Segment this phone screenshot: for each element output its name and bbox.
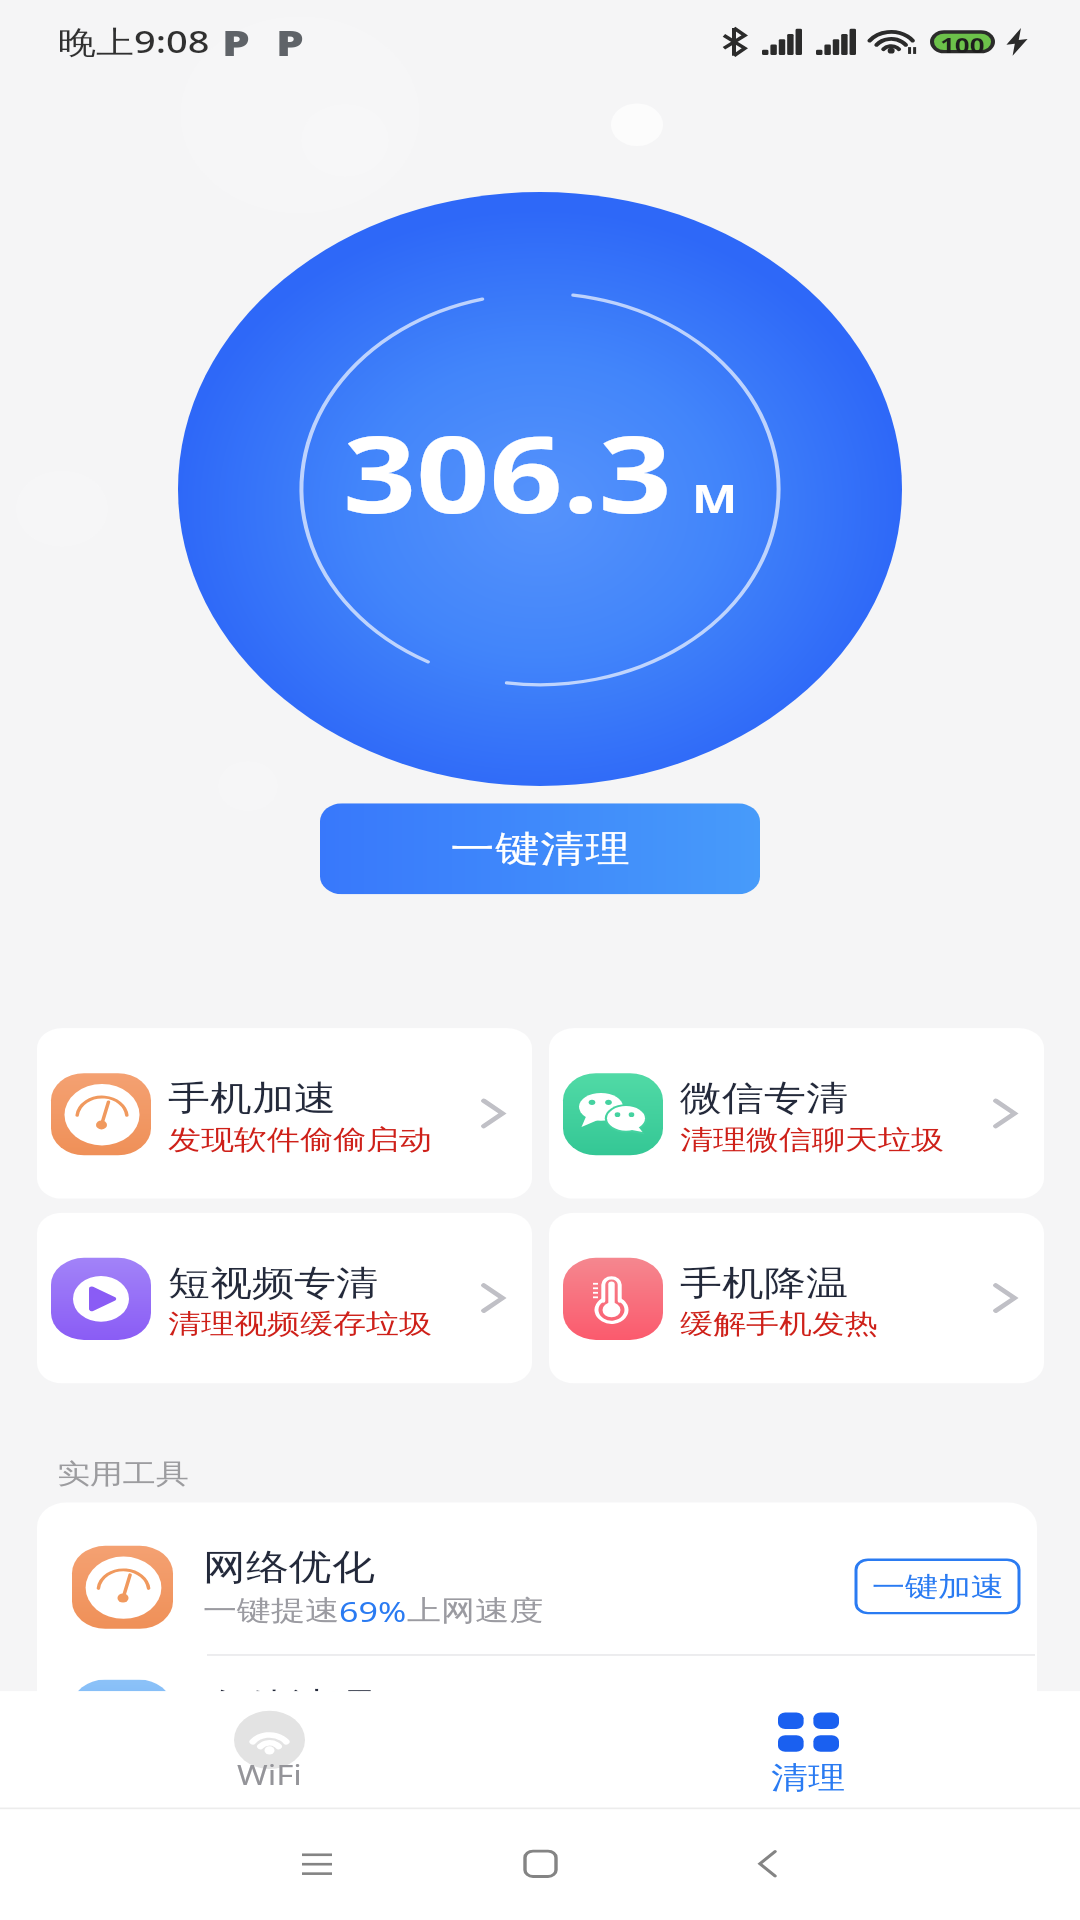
button[interactable]: 手机加速 xyxy=(37,1028,532,1199)
staticText: WiFi xyxy=(237,1757,302,1794)
button[interactable]: 一键加速 xyxy=(856,1560,1019,1613)
button[interactable]: Back xyxy=(642,1808,892,1920)
staticText: 缓解手机发热 xyxy=(680,1307,878,1342)
staticText: 69% xyxy=(339,1593,407,1630)
staticText: 实用工具 xyxy=(57,1457,189,1492)
staticText: 100 xyxy=(940,30,985,53)
staticText: 一键提速 xyxy=(203,1593,339,1628)
staticText: 发现软件偷偷启动 xyxy=(168,1122,432,1157)
button[interactable]: Home xyxy=(415,1808,665,1920)
staticText: 一键加速 xyxy=(872,1570,1004,1604)
staticText: 上网速度 xyxy=(407,1593,543,1628)
staticText: 一键清理 xyxy=(450,826,630,871)
button[interactable]: 网络优化 xyxy=(37,1502,1037,1658)
button[interactable]: WiFi xyxy=(134,1691,404,1808)
button[interactable]: 清理 xyxy=(673,1691,943,1808)
staticText: 清理视频缓存垃圾 xyxy=(168,1307,432,1342)
staticText: 手机加速 xyxy=(168,1077,336,1121)
staticText: 清理微信聊天垃圾 xyxy=(680,1122,944,1157)
button[interactable]: 短视频专清 xyxy=(37,1213,532,1383)
staticText: M xyxy=(692,471,738,524)
button[interactable]: Recent apps xyxy=(192,1808,442,1920)
button[interactable]: 手机降温 xyxy=(549,1213,1044,1383)
staticText: 存储清理 xyxy=(203,1684,375,1729)
staticText: 晚上9:08 xyxy=(58,20,210,62)
staticText: 短视频专清 xyxy=(168,1262,378,1305)
staticText: 清理 xyxy=(771,1758,845,1797)
staticText: 网络优化 xyxy=(203,1545,375,1589)
staticText: 手机降温 xyxy=(680,1262,848,1305)
staticText: P xyxy=(276,17,304,66)
staticText: 微信专清 xyxy=(680,1077,848,1121)
button[interactable]: 微信专清 xyxy=(549,1028,1044,1199)
button[interactable]: 一键清理 xyxy=(320,803,760,894)
staticText: 306.3 xyxy=(343,400,672,543)
staticText: P xyxy=(222,17,250,66)
